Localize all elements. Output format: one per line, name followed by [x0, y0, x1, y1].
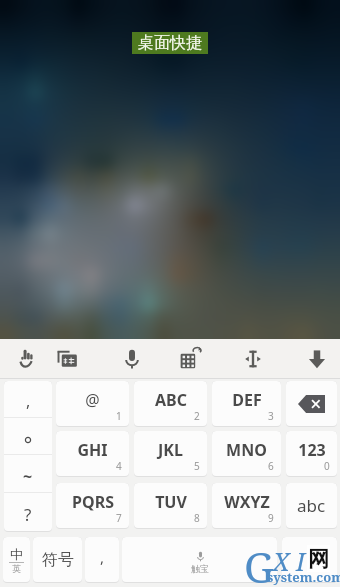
button[interactable]: Symbol keyboard [170, 339, 210, 379]
staticText: 触宝 [191, 563, 209, 574]
staticText: 9 [268, 511, 274, 525]
staticText: , [100, 547, 105, 567]
staticText: ? [24, 503, 32, 526]
staticText: 7 [116, 511, 122, 525]
staticText: 2 [194, 409, 200, 423]
button[interactable]: Voice input [112, 339, 152, 379]
staticText: DEF [232, 389, 262, 411]
staticText: X I [273, 544, 306, 578]
staticText: 6 [268, 459, 274, 473]
button[interactable]: Space [122, 537, 277, 582]
button[interactable]: Handwriting input [8, 339, 48, 379]
staticText: 5 [194, 459, 200, 473]
staticText: JKL [158, 439, 183, 461]
button[interactable]: WXYZ [212, 483, 281, 528]
staticText: 1 [116, 409, 122, 423]
button[interactable]: TUV [134, 483, 207, 528]
staticText: system.com [267, 568, 340, 586]
staticText: , [26, 390, 31, 412]
button[interactable]: Question mark [4, 493, 52, 531]
button[interactable]: 123 [286, 431, 337, 476]
button[interactable]: Comma [4, 381, 52, 418]
button[interactable]: Comma [85, 537, 119, 582]
staticText: WXYZ [224, 491, 270, 513]
staticText: 桌面快捷 [138, 33, 202, 53]
button[interactable]: DEF [212, 381, 281, 426]
staticText: 0 [324, 459, 330, 473]
staticText: G [244, 538, 274, 587]
button[interactable]: Switch keyboard layout [48, 339, 88, 379]
button[interactable]: Switch Chinese English [3, 537, 30, 582]
staticText: TUV [155, 491, 187, 513]
button[interactable]: PQRS [56, 483, 129, 528]
staticText: 3 [268, 409, 274, 423]
staticText: abc [297, 494, 326, 517]
button[interactable]: JKL [134, 431, 207, 476]
staticText: 123 [298, 439, 326, 461]
staticText: 4 [116, 459, 122, 473]
button[interactable]: Symbols [33, 537, 82, 582]
staticText: 符号 [42, 550, 74, 570]
button[interactable]: Tilde [4, 455, 52, 493]
button[interactable]: Backspace [286, 381, 337, 426]
button[interactable]: @ [56, 381, 129, 426]
staticText: 网 [308, 546, 329, 572]
staticText: GHI [77, 439, 108, 461]
staticText: ABC [155, 389, 187, 411]
button[interactable]: GHI [56, 431, 129, 476]
staticText: 英 [12, 563, 21, 574]
button[interactable]: abc [286, 483, 337, 528]
button[interactable]: Move cursor [233, 339, 273, 379]
staticText: 8 [194, 511, 200, 525]
staticText: 中 [10, 546, 23, 562]
staticText: PQRS [72, 491, 114, 513]
button[interactable]: ABC [134, 381, 207, 426]
staticText: MNO [226, 439, 267, 461]
button[interactable]: MNO [212, 431, 281, 476]
button[interactable]: Full stop [4, 418, 52, 455]
button[interactable]: Hide keyboard [297, 339, 337, 379]
staticText: @ [85, 389, 100, 411]
button[interactable]: Enter [282, 537, 337, 582]
staticText: ~ [23, 465, 33, 487]
